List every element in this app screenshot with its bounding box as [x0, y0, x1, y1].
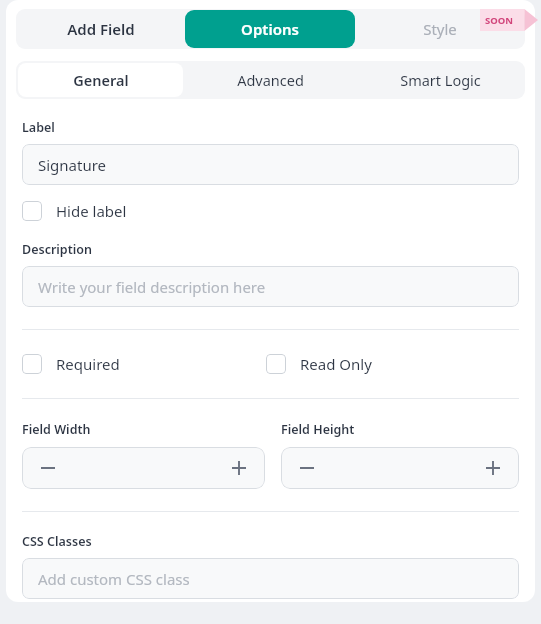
button[interactable]: Signature: [22, 144, 519, 185]
button[interactable]: Decrease: [281, 447, 333, 489]
staticText: Field Height: [281, 421, 355, 438]
button[interactable]: Increase: [213, 447, 265, 489]
button[interactable]: Read Only: [266, 354, 372, 374]
staticText: Style: [423, 19, 457, 39]
button[interactable]: Required: [22, 354, 266, 374]
staticText: Read Only: [300, 354, 372, 374]
staticText: Required: [56, 354, 120, 374]
button[interactable]: Add custom CSS class: [22, 558, 519, 599]
staticText: General: [73, 70, 129, 90]
staticText: Smart Logic: [400, 70, 481, 90]
staticText: Write your field description here: [38, 277, 266, 297]
staticText: CSS Classes: [22, 533, 92, 550]
staticText: Add custom CSS class: [38, 569, 190, 589]
staticText: Hide label: [56, 201, 127, 221]
button[interactable]: Advanced: [185, 61, 355, 99]
button[interactable]: Hide label: [22, 201, 127, 221]
button[interactable]: Smart Logic: [355, 61, 525, 99]
staticText: Add Field: [67, 19, 135, 39]
button[interactable]: Increase: [467, 447, 519, 489]
staticText: SOON: [485, 14, 513, 27]
button[interactable]: Write your field description here: [22, 266, 519, 307]
staticText: Field Width: [22, 421, 91, 438]
button[interactable]: Decrease: [22, 447, 74, 489]
button[interactable]: Options: [185, 10, 355, 48]
staticText: Options: [241, 19, 299, 39]
staticText: Description: [22, 241, 92, 258]
staticText: Advanced: [237, 70, 304, 90]
staticText: Label: [22, 119, 55, 136]
button[interactable]: Style: [355, 9, 525, 49]
button[interactable]: Coming soon: [480, 9, 538, 31]
button[interactable]: General: [18, 63, 183, 97]
staticText: Signature: [38, 155, 107, 175]
button[interactable]: Add Field: [16, 9, 185, 49]
